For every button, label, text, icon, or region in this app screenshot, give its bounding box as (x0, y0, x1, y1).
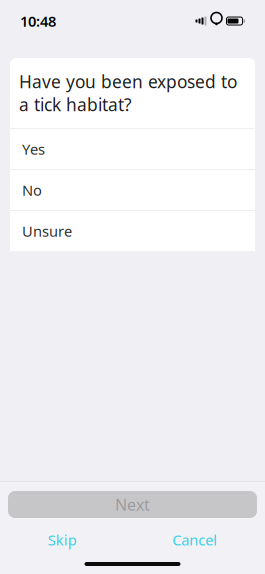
staticText: Next (115, 494, 150, 515)
staticText: Cancel (172, 530, 217, 549)
button[interactable]: Cancel (162, 524, 227, 555)
staticText: 10:48 (20, 11, 56, 31)
staticText: Have you been exposed to a tick habitat? (19, 70, 237, 116)
staticText: No (22, 180, 42, 200)
button[interactable]: Yes (10, 129, 255, 169)
button[interactable]: Unsure (10, 211, 255, 251)
staticText: Yes (22, 139, 45, 159)
button[interactable]: Skip (38, 524, 87, 555)
staticText: Unsure (22, 221, 72, 241)
button[interactable]: Next (8, 491, 257, 518)
staticText: Skip (48, 530, 77, 549)
button[interactable]: No (10, 170, 255, 210)
